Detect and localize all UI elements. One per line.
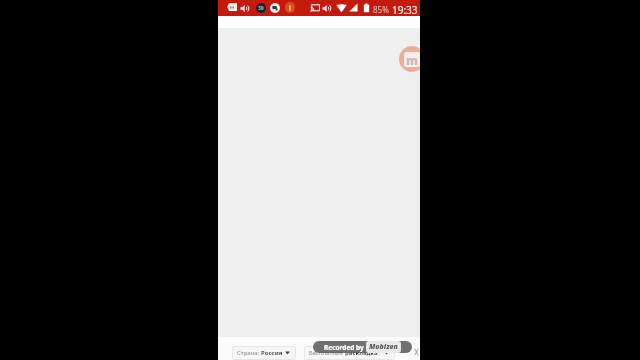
staticText: Бесплатная <box>309 349 345 357</box>
staticText: Mobizen <box>369 342 398 352</box>
staticText: 85% <box>373 4 389 15</box>
button[interactable]: Страна: <box>232 346 296 360</box>
button[interactable]: Бесплатная <box>304 346 395 360</box>
staticText: Страна: <box>237 349 261 357</box>
staticText: Россия <box>261 349 283 357</box>
button[interactable]: Close <box>414 348 419 356</box>
staticText: m <box>406 52 419 67</box>
button[interactable]: Mobizen recorder <box>399 46 420 72</box>
staticText: 30 <box>258 5 264 12</box>
staticText: раскладка <box>345 349 378 357</box>
staticText: Recorded by <box>324 343 366 352</box>
staticText: 19:33 <box>392 3 418 17</box>
